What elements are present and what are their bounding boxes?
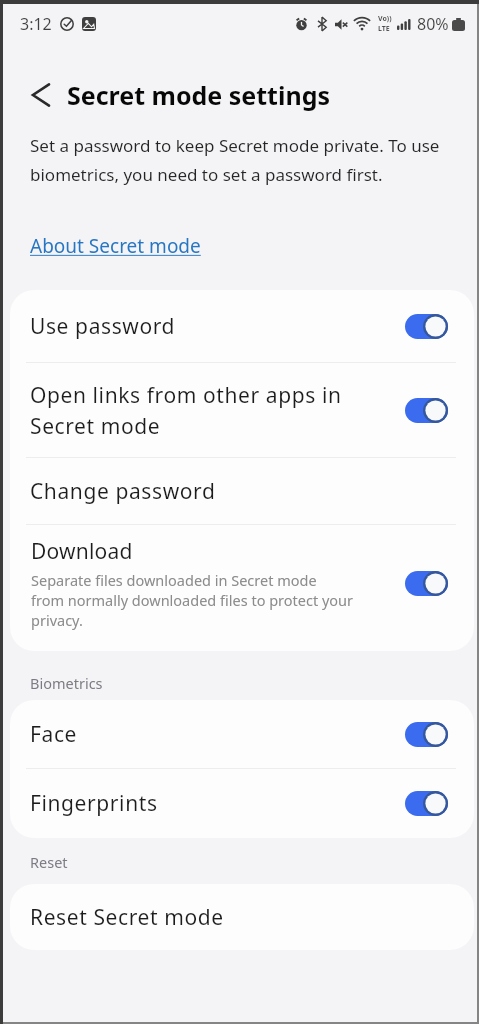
staticText: Fingerprints [30, 789, 405, 818]
staticText: Change password [30, 477, 448, 506]
staticText: Vo)) [378, 14, 392, 24]
staticText: Use password [30, 312, 405, 341]
staticText: Reset [30, 852, 68, 872]
button[interactable]: Use password [10, 290, 474, 362]
button[interactable] [31, 84, 53, 106]
staticText: LTE [378, 24, 390, 34]
button[interactable]: Open links from other apps in Secret mod… [10, 363, 474, 457]
staticText: Set a password to keep Secret mode priva… [30, 134, 450, 186]
button[interactable]: Change password [10, 458, 474, 524]
button[interactable]: About Secret mode [30, 233, 201, 259]
staticText: Download [31, 537, 133, 566]
button[interactable]: Download [10, 525, 474, 651]
staticText: Secret mode settings [67, 78, 331, 112]
staticText: 80% [417, 13, 449, 35]
staticText: 3:12 [20, 13, 52, 35]
staticText: Biometrics [30, 673, 103, 693]
staticText: Open links from other apps in Secret mod… [30, 381, 405, 440]
staticText: Face [30, 720, 405, 749]
button[interactable]: Reset Secret mode [10, 884, 474, 950]
staticText: Reset Secret mode [30, 903, 448, 932]
button[interactable]: Fingerprints [10, 769, 474, 838]
staticText: Separate files downloaded in Secret mode… [31, 570, 354, 630]
button[interactable]: Face [10, 700, 474, 768]
